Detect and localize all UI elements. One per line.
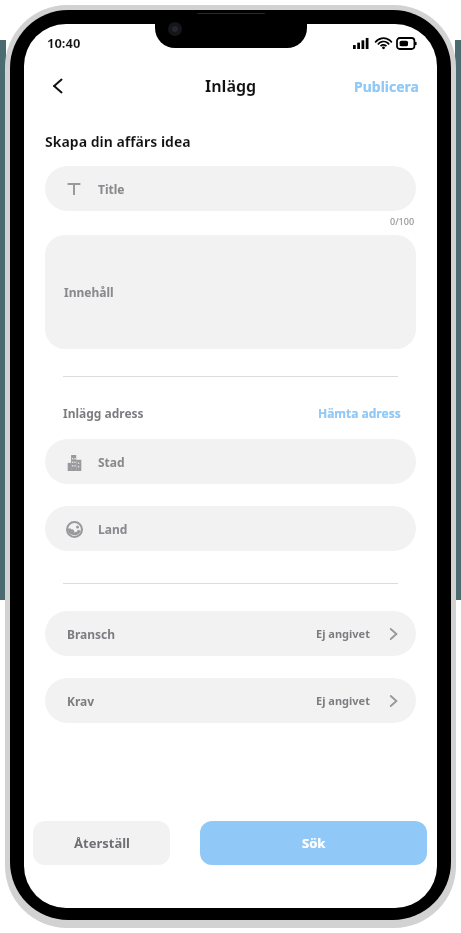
staticText: 10:40 bbox=[47, 34, 81, 52]
button[interactable]: Land bbox=[45, 506, 416, 551]
button[interactable]: Publicera bbox=[354, 77, 419, 96]
staticText: Inlägg bbox=[205, 75, 257, 97]
button[interactable]: Sök bbox=[200, 821, 427, 865]
staticText: Skapa din affärs idea bbox=[45, 132, 191, 151]
staticText: Sök bbox=[302, 834, 326, 852]
staticText: 0/100 bbox=[390, 215, 415, 227]
staticText: Innehåll bbox=[64, 284, 114, 300]
button[interactable]: Hämta adress bbox=[318, 405, 401, 421]
staticText: Återställ bbox=[74, 834, 130, 852]
staticText: Ej angivet bbox=[316, 693, 370, 708]
staticText: Land bbox=[98, 521, 128, 537]
button[interactable]: Innehåll bbox=[45, 235, 416, 349]
staticText: Ej angivet bbox=[316, 626, 370, 641]
staticText: Inlägg adress bbox=[63, 405, 144, 421]
staticText: Stad bbox=[98, 454, 125, 470]
staticText: Bransch bbox=[67, 626, 116, 642]
staticText: Krav bbox=[67, 693, 95, 709]
button[interactable]: Stad bbox=[45, 439, 416, 484]
staticText: Hämta adress bbox=[318, 405, 401, 421]
button[interactable]: Back bbox=[38, 66, 78, 106]
staticText: Title bbox=[98, 181, 125, 197]
button[interactable]: Title bbox=[45, 166, 416, 211]
button[interactable]: Krav bbox=[45, 678, 416, 723]
button[interactable]: Återställ bbox=[33, 821, 170, 865]
staticText: Publicera bbox=[354, 77, 419, 96]
button[interactable]: Bransch bbox=[45, 611, 416, 656]
